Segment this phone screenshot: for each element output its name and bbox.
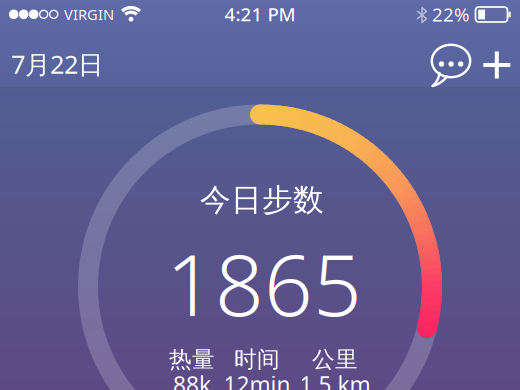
button[interactable]: Messages xyxy=(426,37,474,91)
staticText: 时间 xyxy=(234,346,280,373)
staticText: 88k xyxy=(173,369,211,390)
staticText: 1.5 km xyxy=(299,369,370,390)
staticText: 热量 xyxy=(169,346,215,373)
staticText: 公里 xyxy=(312,346,358,373)
staticText: 1865 xyxy=(166,226,362,340)
staticText: 7月22日 xyxy=(11,47,103,81)
staticText: 4:21 PM xyxy=(224,2,295,26)
staticText: 22% xyxy=(432,2,470,27)
staticText: 今日步数 xyxy=(200,181,324,219)
button[interactable]: Add xyxy=(479,45,515,85)
staticText: 12min xyxy=(223,369,290,390)
staticText: VIRGIN xyxy=(64,5,114,24)
